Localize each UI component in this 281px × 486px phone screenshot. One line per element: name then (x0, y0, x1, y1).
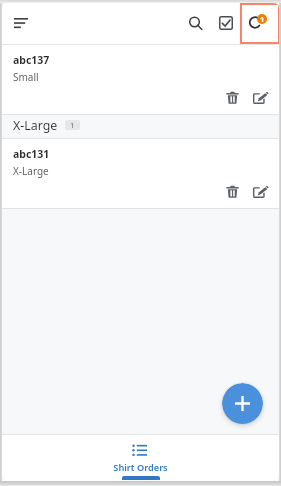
button[interactable]: abc131 (2, 139, 279, 208)
button[interactable]: Shirt Orders (91, 435, 190, 476)
button[interactable]: Delete (221, 86, 243, 108)
button[interactable]: Edit (250, 180, 272, 202)
button[interactable]: Select (213, 10, 239, 36)
staticText: 1 (70, 120, 75, 130)
button[interactable]: abc137 (2, 45, 279, 114)
button[interactable]: Edit (250, 86, 272, 108)
staticText: Small (13, 70, 39, 84)
staticText: abc131 (13, 147, 50, 161)
button[interactable]: Sync (240, 3, 279, 44)
button[interactable]: Add (222, 383, 263, 424)
button[interactable]: Menu (8, 10, 34, 36)
button[interactable]: Search (183, 11, 209, 37)
button[interactable]: Delete (221, 180, 243, 202)
staticText: X-Large (13, 164, 49, 178)
staticText: Shirt Orders (113, 461, 168, 474)
staticText: 1 (260, 14, 265, 24)
staticText: abc137 (13, 53, 50, 67)
staticText: X-Large (13, 117, 58, 134)
